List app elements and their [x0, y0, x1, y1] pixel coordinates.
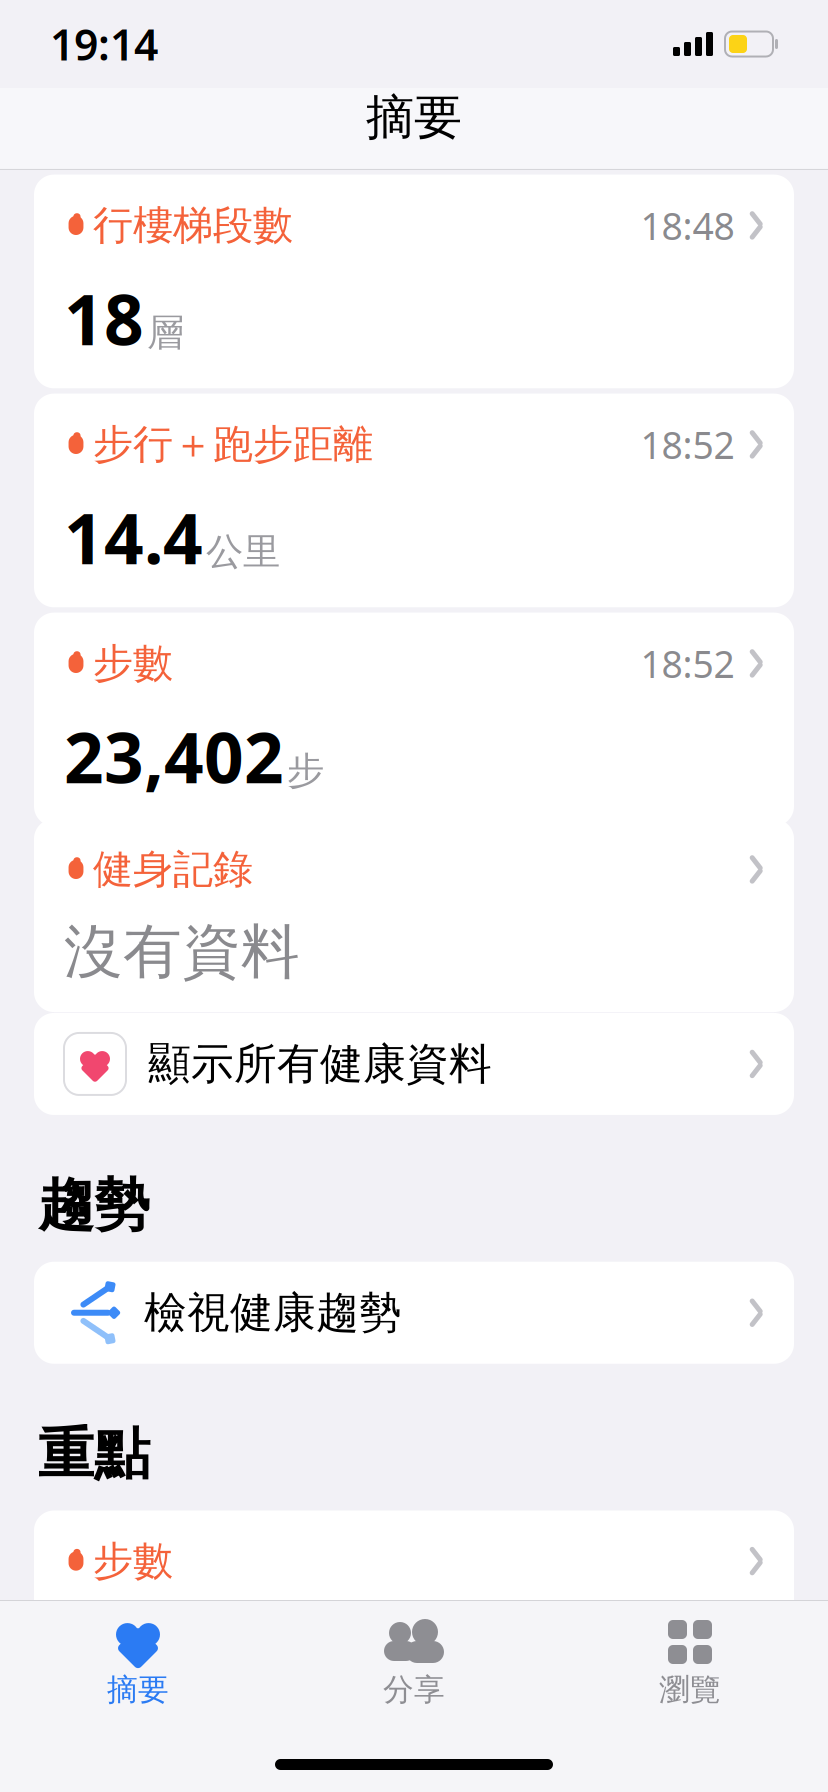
- staticText: 分享: [383, 1671, 445, 1709]
- staticText: 公里: [206, 529, 280, 575]
- staticText: 18:48: [640, 201, 734, 250]
- button[interactable]: 顯示所有健康資料: [34, 1013, 794, 1115]
- staticText: 23,402: [64, 710, 284, 802]
- staticText: 18:52: [640, 639, 734, 688]
- staticText: 檢視健康趨勢: [144, 1286, 402, 1339]
- staticText: 19:14: [50, 16, 158, 72]
- staticText: 步: [287, 748, 324, 794]
- button[interactable]: 步行＋跑步距離: [34, 394, 794, 607]
- button[interactable]: 摘要: [0, 1607, 276, 1715]
- staticText: 步行＋跑步距離: [93, 420, 373, 469]
- staticText: 步數: [93, 1536, 173, 1586]
- staticText: 18: [64, 272, 144, 364]
- staticText: 健身記錄: [93, 845, 253, 894]
- staticText: 摘要: [107, 1671, 169, 1709]
- button[interactable]: 瀏覽: [552, 1607, 828, 1715]
- staticText: 瀏覽: [659, 1671, 721, 1709]
- staticText: 趨勢: [38, 1171, 150, 1240]
- staticText: 顯示所有健康資料: [148, 1038, 492, 1090]
- button[interactable]: 行樓梯段數: [34, 175, 794, 388]
- staticText: 行樓梯段數: [93, 201, 293, 250]
- staticText: 過去一week，你平均每天達到 23,402 步: [64, 1608, 673, 1728]
- button[interactable]: 健身記錄: [34, 819, 794, 1012]
- staticText: 步數: [93, 639, 173, 688]
- staticText: 14.4: [64, 491, 203, 583]
- staticText: 層: [147, 310, 184, 356]
- staticText: 摘要: [366, 88, 462, 147]
- staticText: 18:52: [640, 420, 734, 469]
- button[interactable]: 步數: [34, 1510, 794, 1728]
- staticText: 沒有資料: [64, 916, 300, 988]
- staticText: 重點: [38, 1420, 150, 1488]
- button[interactable]: 步數: [34, 613, 794, 826]
- button[interactable]: 檢視健康趨勢: [34, 1262, 794, 1364]
- button[interactable]: 分享: [276, 1607, 552, 1715]
